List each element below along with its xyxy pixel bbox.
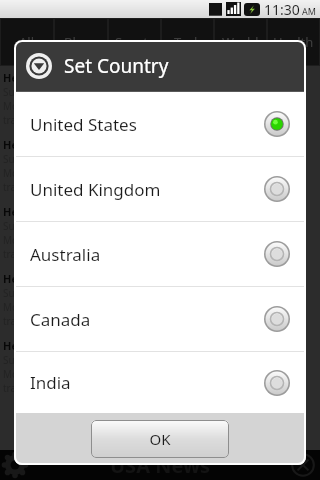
staticText: Sports [115, 33, 155, 51]
staticText: Headline text here [3, 271, 105, 286]
staticText: trailing line [3, 180, 56, 194]
staticText: More summary text [3, 300, 96, 314]
staticText: United Kingdom [30, 178, 264, 201]
staticText: All [19, 33, 35, 51]
staticText: Summary line of the story [3, 286, 125, 300]
staticText: Tech [174, 33, 202, 51]
staticText: Headline text here [3, 204, 105, 219]
staticText: World [222, 33, 259, 51]
staticText: Summary line of the story [3, 219, 125, 233]
staticText: United States [30, 113, 264, 136]
staticText: Australia [30, 243, 264, 266]
button[interactable]: United Kingdom [14, 157, 306, 221]
staticText: India [30, 371, 264, 394]
staticText: Summary line of the story [3, 85, 125, 99]
staticText: More summary text [3, 166, 96, 180]
button[interactable]: OK [91, 420, 229, 458]
button[interactable]: Canada [14, 287, 306, 351]
staticText: Summary line of the story [3, 353, 125, 367]
staticText: Headline text here [3, 137, 105, 152]
staticText: 11:30 [264, 0, 300, 18]
staticText: Health [273, 33, 314, 51]
staticText: Summary line of the story [3, 152, 125, 166]
staticText: USA News [110, 452, 211, 479]
staticText: AM [302, 5, 316, 17]
staticText: Headline text here [3, 70, 105, 85]
staticText: Set Country [64, 53, 169, 79]
staticText: Headline text here [3, 338, 105, 353]
staticText: More summary text [3, 367, 96, 381]
staticText: trailing line [3, 247, 56, 261]
staticText: trailing line [3, 381, 56, 395]
staticText: Blogs [64, 33, 98, 51]
button[interactable]: United States [14, 92, 306, 156]
staticText: trailing line [3, 113, 56, 127]
staticText: Canada [30, 308, 264, 331]
staticText: More summary text [3, 233, 96, 247]
button[interactable]: Australia [14, 222, 306, 286]
staticText: OK [149, 429, 171, 449]
staticText: More summary text [3, 99, 96, 113]
button[interactable]: India [14, 352, 306, 413]
staticText: trailing line [3, 314, 56, 328]
